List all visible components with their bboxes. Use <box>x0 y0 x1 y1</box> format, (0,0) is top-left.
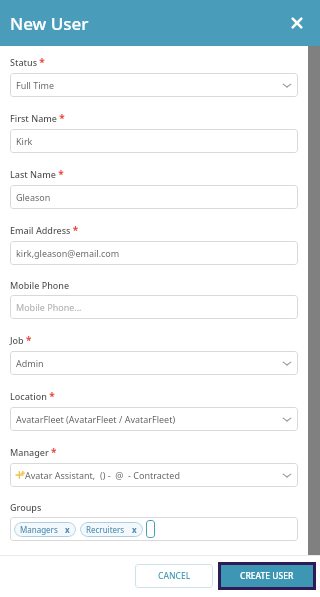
button[interactable]: Mobile Phone... <box>10 295 298 319</box>
staticText: Status * <box>10 55 45 69</box>
button[interactable]: kirk,gleason@email.com <box>10 241 298 265</box>
staticText: First Name * <box>10 111 65 125</box>
staticText: Mobile Phone <box>10 279 70 291</box>
button[interactable]: AvatarFleet (AvatarFleet / AvatarFleet) <box>10 407 298 431</box>
button[interactable]: CANCEL <box>135 564 213 588</box>
staticText: Admin <box>16 357 282 369</box>
button[interactable]: Full Time <box>10 73 298 97</box>
staticText: CREATE USER <box>240 570 294 582</box>
staticText: Job * <box>10 333 32 347</box>
staticText: Email Address * <box>10 223 79 237</box>
button[interactable]: Close <box>286 12 308 34</box>
button[interactable]: Recruiters <box>80 522 143 537</box>
staticText: Location * <box>10 389 55 403</box>
staticText: x <box>132 524 137 535</box>
staticText: Manager * <box>10 445 57 459</box>
button[interactable]: Avatar Assistant, () - @ - Contracted <box>10 463 298 487</box>
button[interactable]: Admin <box>10 351 298 375</box>
staticText: Managers <box>20 524 58 535</box>
button[interactable]: Kirk <box>10 129 298 153</box>
staticText: AvatarFleet (AvatarFleet / AvatarFleet) <box>16 413 282 425</box>
staticText: kirk,gleason@email.com <box>16 247 292 259</box>
staticText: Last Name * <box>10 167 64 181</box>
button[interactable]: Managers <box>14 522 76 537</box>
staticText: Avatar Assistant, () - @ - Contracted <box>25 469 282 481</box>
staticText: Mobile Phone... <box>16 301 292 313</box>
staticText: Kirk <box>16 135 292 147</box>
button[interactable]: Gleason <box>10 185 298 209</box>
staticText: Groups <box>10 501 42 513</box>
staticText: x <box>65 524 70 535</box>
staticText: CANCEL <box>158 570 191 582</box>
staticText: New User <box>10 12 89 35</box>
staticText: Gleason <box>16 191 292 203</box>
button[interactable]: Managers <box>10 517 298 541</box>
staticText: Full Time <box>16 79 282 91</box>
staticText: Recruiters <box>86 524 125 535</box>
button[interactable]: CREATE USER <box>221 565 313 587</box>
